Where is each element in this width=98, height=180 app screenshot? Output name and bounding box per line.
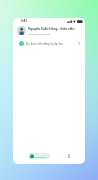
staticText: 9:41 [21, 19, 27, 23]
button[interactable]: Xin thực hiện đăng ký lớp học [13, 38, 85, 49]
button[interactable]: Tài khoản [53, 149, 85, 163]
staticText: Xin thực hiện đăng ký lớp học [26, 42, 64, 46]
button[interactable]: Trang chủ [21, 149, 57, 163]
staticText: hungnt@gmail.com [28, 32, 51, 35]
button[interactable]: Nguyễn Tuấn Hùng - Giáo viên [13, 25, 85, 36]
staticText: Trang chủ [35, 155, 47, 158]
staticText: Nguyễn Tuấn Hùng - Giáo viên [28, 27, 75, 31]
